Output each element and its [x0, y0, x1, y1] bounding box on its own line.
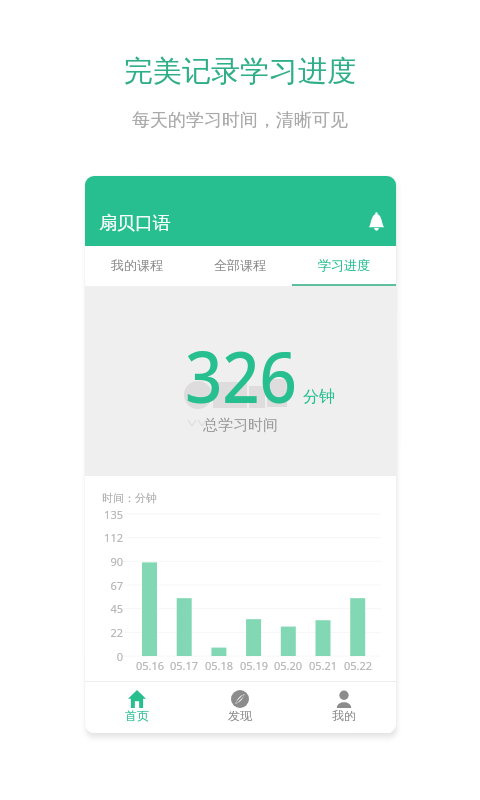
staticText: 45	[93, 601, 123, 616]
button[interactable]: 我的课程	[85, 246, 188, 286]
staticText: 发现	[228, 708, 252, 723]
button[interactable]: 学习进度	[292, 246, 396, 286]
staticText: 首页	[125, 708, 149, 723]
button[interactable]: 我的	[292, 681, 396, 733]
staticText: 我的	[332, 708, 356, 723]
staticText: 时间：分钟	[102, 491, 157, 505]
staticText: 0	[93, 649, 123, 664]
staticText: 全部课程	[214, 257, 266, 273]
staticText: 135	[93, 507, 123, 522]
staticText: 扇贝口语	[99, 212, 171, 235]
staticText: 05.17	[167, 658, 201, 673]
staticText: 326	[185, 327, 297, 424]
staticText: 05.21	[306, 658, 340, 673]
staticText: 112	[93, 530, 123, 545]
staticText: 总学习时间	[203, 416, 278, 435]
staticText: 我的课程	[111, 257, 163, 273]
button[interactable]: 发现	[188, 681, 292, 733]
button[interactable]: Notifications	[361, 209, 391, 235]
staticText: 05.22	[341, 658, 375, 673]
staticText: 22	[93, 625, 123, 640]
staticText: 每天的学习时间，清晰可见	[132, 109, 348, 132]
staticText: 67	[93, 578, 123, 593]
staticText: 05.16	[133, 658, 167, 673]
staticText: 完美记录学习进度	[124, 53, 356, 90]
button[interactable]: 首页	[85, 681, 188, 733]
staticText: 分钟	[303, 387, 335, 407]
staticText: 90	[93, 554, 123, 569]
staticText: 05.19	[237, 658, 271, 673]
staticText: 学习进度	[318, 257, 370, 273]
staticText: 05.20	[271, 658, 305, 673]
button[interactable]: 全部课程	[188, 246, 292, 286]
staticText: 05.18	[202, 658, 236, 673]
